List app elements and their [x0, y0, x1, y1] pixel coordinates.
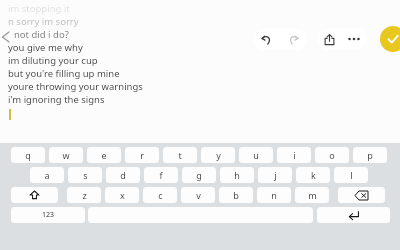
staticText: d — [120, 169, 126, 181]
button[interactable]: 123 — [11, 207, 85, 223]
staticText: h — [234, 169, 240, 181]
button[interactable]: m — [295, 187, 329, 203]
button[interactable]: k — [296, 167, 330, 183]
button[interactable]: y — [201, 147, 235, 163]
staticText: p — [367, 149, 373, 161]
button[interactable]: x — [105, 187, 139, 203]
button[interactable]: Done — [380, 26, 400, 52]
staticText: e — [101, 149, 107, 161]
staticText: i'm ignoring the signs — [8, 93, 105, 106]
button[interactable]: Share — [317, 28, 342, 50]
staticText: w — [62, 149, 70, 161]
staticText: n — [271, 189, 277, 201]
button[interactable]: h — [220, 167, 254, 183]
staticText: v — [196, 189, 201, 201]
button[interactable]: Undo — [253, 28, 280, 50]
staticText: r — [140, 149, 144, 161]
staticText: im diluting your cup — [8, 54, 98, 67]
button[interactable]: l — [334, 167, 368, 183]
staticText: z — [82, 189, 87, 201]
staticText: youre throwing your warnings — [8, 80, 143, 93]
staticText: you give me why — [8, 41, 83, 54]
button[interactable]: v — [181, 187, 215, 203]
staticText: n sorry im sorry — [8, 15, 79, 28]
button[interactable]: q — [11, 147, 45, 163]
button[interactable]: g — [182, 167, 216, 183]
staticText: i — [293, 149, 296, 161]
staticText: g — [196, 169, 202, 181]
button[interactable]: o — [315, 147, 349, 163]
button[interactable]: w — [49, 147, 83, 163]
button[interactable]: c — [143, 187, 177, 203]
staticText: x — [120, 189, 125, 201]
button[interactable]: r — [125, 147, 159, 163]
button[interactable]: e — [87, 147, 121, 163]
staticText: y — [216, 149, 221, 161]
button[interactable]: Backspace — [338, 187, 385, 203]
staticText: but you're filling up mine — [8, 67, 120, 80]
staticText: im stopping it — [8, 2, 70, 15]
staticText: o — [329, 149, 335, 161]
button[interactable]: f — [144, 167, 178, 183]
staticText: 123 — [42, 210, 55, 220]
staticText: c — [158, 189, 163, 201]
button[interactable]: More options — [342, 28, 366, 50]
button[interactable]: Return — [317, 207, 390, 223]
staticText: u — [253, 149, 259, 161]
button[interactable]: j — [258, 167, 292, 183]
staticText: not did i do? — [14, 28, 69, 41]
button[interactable]: a — [30, 167, 64, 183]
staticText: m — [308, 189, 317, 201]
button[interactable]: n — [257, 187, 291, 203]
other: Back — [1, 32, 11, 42]
button[interactable]: p — [353, 147, 387, 163]
button[interactable]: u — [239, 147, 273, 163]
staticText: t — [178, 149, 182, 161]
button[interactable]: z — [67, 187, 101, 203]
button[interactable]: Redo — [280, 28, 307, 50]
button[interactable]: Shift — [11, 187, 58, 203]
staticText: b — [233, 189, 239, 201]
staticText: a — [44, 169, 50, 181]
button[interactable]: d — [106, 167, 140, 183]
button[interactable]: i — [277, 147, 311, 163]
staticText: j — [274, 169, 277, 181]
button[interactable]: t — [163, 147, 197, 163]
staticText: l — [350, 169, 353, 181]
staticText: q — [25, 149, 31, 161]
staticText: f — [159, 169, 163, 181]
button[interactable]: s — [68, 167, 102, 183]
staticText: s — [83, 169, 88, 181]
button[interactable]: b — [219, 187, 253, 203]
staticText: k — [311, 169, 316, 181]
